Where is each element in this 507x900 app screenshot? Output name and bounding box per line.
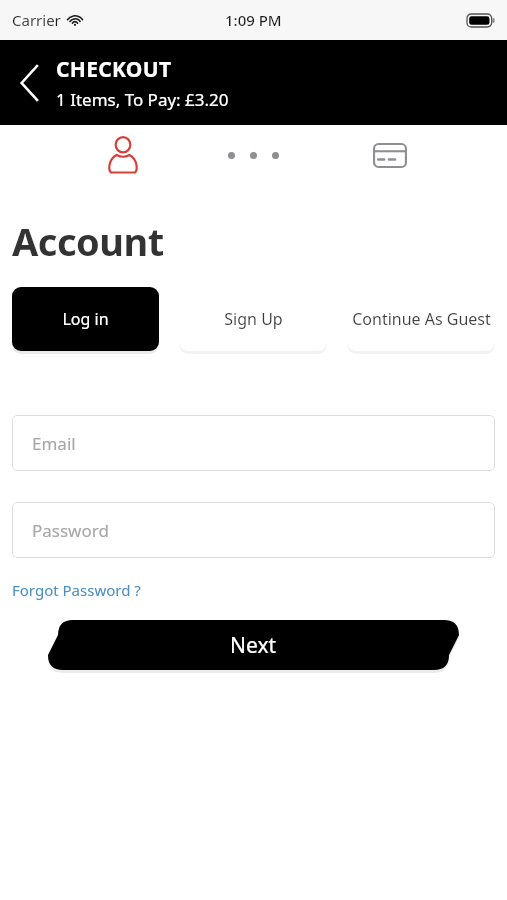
staticText: 1 Items, To Pay: £3.20 <box>56 88 229 111</box>
staticText: Log in <box>62 308 109 330</box>
staticText: Next <box>230 631 277 660</box>
staticText: Forgot Password ? <box>12 580 141 600</box>
button[interactable]: Next <box>48 620 459 670</box>
button[interactable]: Forgot Password ? <box>12 578 141 602</box>
button[interactable]: Payment step <box>368 133 412 177</box>
button[interactable]: Account step <box>100 132 146 178</box>
button[interactable]: Log in <box>12 287 159 351</box>
staticText: Carrier <box>12 10 61 30</box>
staticText: Email <box>32 432 76 455</box>
staticText: 1:09 PM <box>225 10 282 30</box>
button[interactable]: Password <box>12 502 495 558</box>
button[interactable]: Back <box>8 61 52 105</box>
button[interactable]: Email <box>12 415 495 471</box>
staticText: Sign Up <box>224 308 283 330</box>
staticText: Account <box>12 215 164 267</box>
button[interactable]: Sign Up <box>179 287 327 351</box>
staticText: Password <box>32 519 109 542</box>
staticText: CHECKOUT <box>56 55 172 84</box>
staticText: Continue As Guest <box>352 308 491 330</box>
button[interactable]: Continue As Guest <box>347 287 495 351</box>
